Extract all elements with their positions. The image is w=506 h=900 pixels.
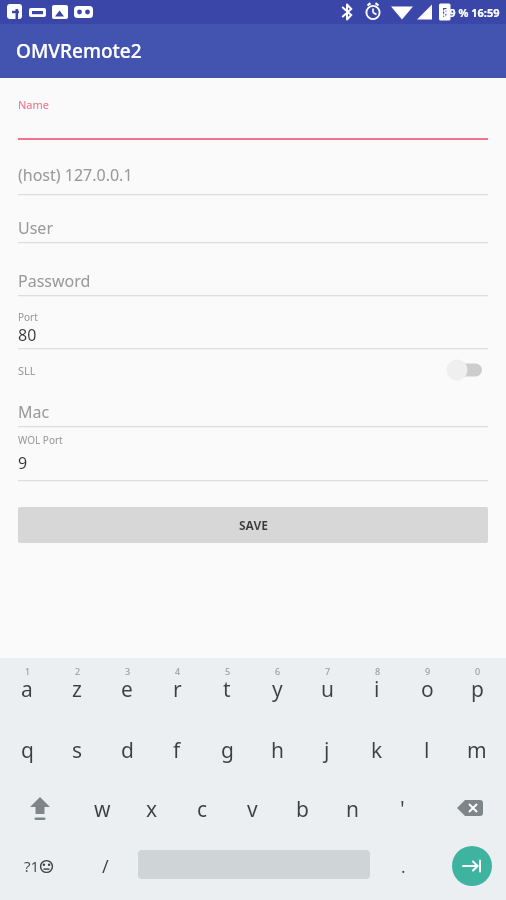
button[interactable]: o [402, 662, 452, 716]
button[interactable]: SAVE [18, 507, 488, 543]
staticText: e [121, 675, 133, 704]
staticText: 89 % 16:59 [443, 5, 500, 20]
button[interactable]: 9 [18, 452, 506, 476]
staticText: r [173, 675, 182, 704]
button[interactable]: v [227, 782, 277, 836]
button[interactable]: z [52, 662, 102, 716]
button[interactable]: Name [18, 97, 506, 114]
button[interactable]: s [52, 723, 102, 777]
button[interactable]: Password [18, 270, 506, 294]
staticText: v [247, 795, 258, 824]
button[interactable]: / [80, 841, 130, 891]
staticText: 2 [75, 665, 81, 677]
staticText: a [21, 675, 33, 704]
staticText: Name [18, 97, 50, 112]
staticText: d [121, 736, 134, 765]
staticText: 9 [18, 452, 28, 474]
button[interactable]: u [302, 662, 352, 716]
staticText: c [197, 795, 208, 824]
staticText: 1 [25, 665, 31, 677]
staticText: 9 [425, 665, 431, 677]
staticText: k [371, 736, 383, 765]
button[interactable]: . [378, 841, 428, 891]
button[interactable]: (host) 127.0.0.1 [18, 164, 506, 188]
staticText: h [271, 736, 284, 765]
button[interactable]: x [127, 782, 177, 836]
button[interactable]: d [102, 723, 152, 777]
staticText: u [321, 675, 334, 704]
button[interactable]: c [177, 782, 227, 836]
button[interactable]: i [352, 662, 402, 716]
button[interactable]: f [152, 723, 202, 777]
staticText: WOL Port [18, 433, 63, 447]
button[interactable]: a [2, 662, 52, 716]
button[interactable]: 80 [18, 324, 506, 348]
staticText: 4 [175, 665, 181, 677]
button[interactable]: h [252, 723, 302, 777]
button[interactable]: User [18, 217, 506, 241]
button[interactable]: Port [18, 310, 506, 326]
staticText: z [72, 675, 82, 704]
staticText: j [324, 736, 330, 765]
button[interactable]: j [302, 723, 352, 777]
button[interactable]: r [152, 662, 202, 716]
staticText: l [424, 736, 430, 765]
button[interactable]: l [402, 723, 452, 777]
button[interactable]: Enter [452, 846, 492, 886]
staticText: g [221, 736, 234, 765]
button[interactable]: OMVRemote2 [0, 24, 506, 78]
button[interactable]: ?1 [5, 841, 71, 891]
staticText: w [94, 795, 111, 824]
other: SLL toggle [444, 358, 488, 382]
staticText: Port [18, 310, 38, 324]
staticText: m [467, 736, 487, 765]
staticText: n [346, 795, 359, 824]
staticText: f [173, 736, 181, 765]
staticText: t [223, 675, 231, 704]
button[interactable]: p [452, 662, 502, 716]
staticText: SLL [18, 363, 36, 378]
staticText: Mac [18, 401, 50, 423]
staticText: 0 [475, 665, 481, 677]
staticText: x [146, 795, 158, 824]
button[interactable]: t [202, 662, 252, 716]
button[interactable]: Backspace [444, 782, 496, 836]
staticText: y [272, 675, 283, 704]
staticText: ' [400, 795, 405, 824]
staticText: OMVRemote2 [16, 38, 142, 64]
button[interactable]: Mac [18, 401, 506, 425]
button[interactable]: y [252, 662, 302, 716]
staticText: / [102, 854, 109, 879]
staticText: 3 [125, 665, 131, 677]
staticText: 8 [375, 665, 381, 677]
staticText: SAVE [239, 517, 268, 533]
button[interactable]: b [277, 782, 327, 836]
button[interactable]: WOL Port [18, 433, 506, 449]
button[interactable]: ' [377, 782, 427, 836]
staticText: i [374, 675, 380, 704]
button[interactable]: g [202, 723, 252, 777]
staticText: 5 [225, 665, 231, 677]
staticText: p [471, 675, 484, 704]
button[interactable]: SLL [0, 355, 506, 385]
button[interactable]: q [2, 723, 52, 777]
staticText: (host) 127.0.0.1 [18, 164, 133, 186]
staticText: q [21, 736, 34, 765]
button[interactable]: n [327, 782, 377, 836]
staticText: 7 [325, 665, 331, 677]
button[interactable]: m [452, 723, 502, 777]
button[interactable]: e [102, 662, 152, 716]
staticText: o [421, 675, 434, 704]
staticText: 80 [18, 324, 37, 346]
staticText: s [72, 736, 83, 765]
staticText: b [296, 795, 309, 824]
button[interactable]: Shift [14, 782, 66, 836]
staticText: ?1 [24, 856, 40, 876]
button[interactable]: w [77, 782, 127, 836]
staticText: Password [18, 270, 91, 292]
staticText: User [18, 217, 53, 239]
staticText: . [401, 855, 406, 878]
staticText: 6 [275, 665, 281, 677]
button[interactable]: k [352, 723, 402, 777]
